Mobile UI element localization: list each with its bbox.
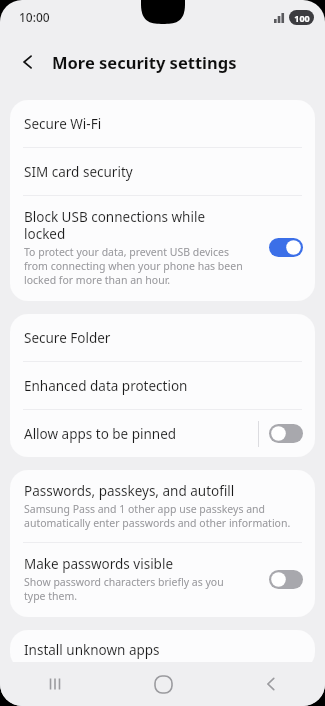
staticText: 10:00 (19, 9, 50, 25)
staticText: Enhanced data protection (24, 377, 188, 395)
other: Block USB connections while locked (269, 238, 303, 257)
button[interactable]: Enhanced data protection (10, 362, 315, 409)
button[interactable]: Home (109, 662, 217, 706)
staticText: Block USB connections while locked (24, 208, 205, 243)
staticText: 100 (294, 12, 310, 24)
button[interactable]: Passwords, passkeys, and autofill (10, 470, 315, 542)
other: Make passwords visible (269, 570, 303, 589)
button[interactable]: Recents (0, 662, 109, 706)
other: Allow apps to be pinned (269, 424, 303, 443)
staticText: Secure Folder (24, 329, 111, 347)
staticText: To protect your data, prevent USB device… (24, 245, 243, 287)
button[interactable]: SIM card security (10, 148, 315, 195)
staticText: SIM card security (24, 163, 133, 181)
button[interactable]: Allow apps to be pinned (10, 410, 315, 457)
staticText: Install unknown apps (24, 641, 160, 659)
staticText: Secure Wi-Fi (24, 115, 102, 133)
button[interactable]: Back (16, 50, 40, 74)
staticText: Show password characters briefly as you … (24, 575, 224, 603)
staticText: Allow apps to be pinned (24, 425, 258, 443)
staticText: Passwords, passkeys, and autofill (24, 482, 235, 500)
button[interactable]: Secure Folder (10, 314, 315, 361)
staticText: Make passwords visible (24, 555, 174, 573)
button[interactable]: Block USB connections while locked (10, 196, 315, 301)
button[interactable]: Back (217, 662, 325, 706)
button[interactable]: Make passwords visible (10, 543, 315, 617)
button[interactable]: Secure Wi-Fi (10, 100, 315, 147)
button[interactable]: Install unknown apps (10, 630, 315, 670)
staticText: More security settings (52, 51, 237, 73)
staticText: Samsung Pass and 1 other app use passkey… (24, 502, 291, 530)
